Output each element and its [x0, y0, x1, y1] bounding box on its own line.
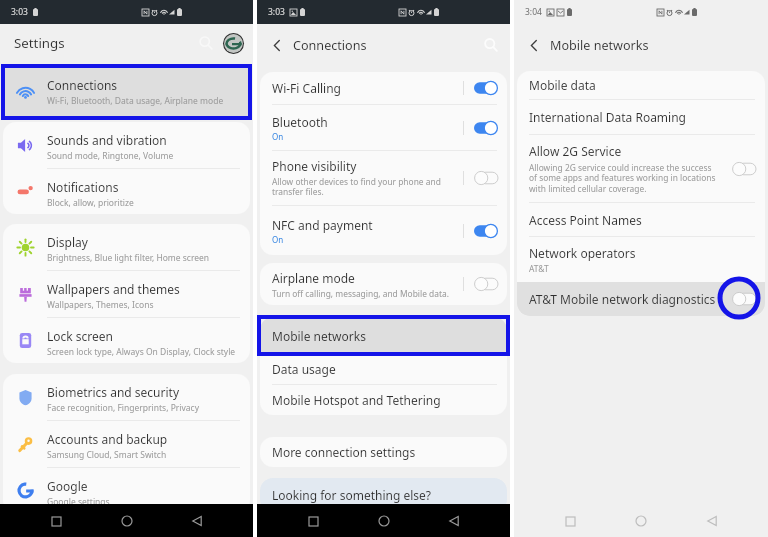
button[interactable]: Back: [697, 506, 727, 536]
staticText: Accounts and backup: [47, 431, 168, 447]
staticText: Google: [47, 478, 88, 494]
button[interactable]: Accounts and backup: [3, 421, 250, 467]
staticText: Network operators: [529, 245, 636, 261]
button[interactable]: Back: [182, 506, 212, 536]
staticText: Wi-Fi Calling: [272, 80, 341, 96]
staticText: Bluetooth: [272, 114, 328, 130]
button[interactable]: Recents: [298, 506, 328, 536]
button[interactable]: Wi-Fi Calling: [260, 72, 507, 104]
staticText: Mobile Hotspot and Tethering: [272, 392, 441, 408]
staticText: Lock screen: [47, 328, 114, 344]
button[interactable]: Home: [626, 506, 656, 536]
button[interactable]: Turn on Phone visibility: [464, 151, 507, 205]
button[interactable]: Turn on Airplane mode: [464, 263, 507, 305]
button[interactable]: Home: [112, 506, 142, 536]
staticText: Mobile networks: [272, 328, 366, 344]
staticText: AT&T: [529, 263, 549, 274]
button[interactable]: Toggle AT&T Mobile network diagnostics: [723, 282, 765, 316]
button[interactable]: Mobile Hotspot and Tethering: [260, 385, 507, 415]
staticText: Airplane mode: [272, 270, 355, 286]
button[interactable]: Allow 2G Service: [517, 135, 765, 202]
staticText: Notifications: [47, 179, 119, 195]
staticText: Connections: [47, 77, 118, 93]
staticText: 3:04: [525, 6, 542, 18]
staticText: Wallpapers, Themes, Icons: [47, 299, 154, 311]
staticText: On: [272, 234, 284, 245]
button[interactable]: Wallpapers and themes: [3, 271, 250, 317]
button[interactable]: Recents: [555, 506, 585, 536]
button[interactable]: International Data Roaming: [517, 100, 765, 134]
staticText: On: [272, 131, 284, 142]
button[interactable]: Data usage: [260, 354, 507, 384]
staticText: Looking for something else?: [272, 487, 432, 503]
staticText: Face recognition, Fingerprints, Privacy: [47, 402, 199, 414]
staticText: Block, allow, prioritize: [47, 197, 134, 209]
staticText: Display: [47, 234, 88, 250]
button[interactable]: More connection settings: [260, 437, 507, 467]
staticText: Access Point Names: [529, 212, 642, 228]
staticText: NFC and payment: [272, 217, 373, 233]
button[interactable]: Mobile networks: [260, 317, 507, 354]
staticText: Turn off calling, messaging, and Mobile …: [272, 288, 449, 299]
staticText: Mobile networks: [550, 37, 649, 54]
button[interactable]: Back: [524, 35, 544, 55]
button[interactable]: Display: [3, 224, 250, 270]
button[interactable]: Biometrics and security: [3, 374, 250, 420]
staticText: International Data Roaming: [529, 109, 686, 125]
button[interactable]: Google: [3, 468, 250, 513]
button[interactable]: Airplane mode: [260, 263, 507, 305]
staticText: Phone visibility: [272, 158, 357, 174]
button[interactable]: Access Point Names: [517, 203, 765, 236]
staticText: Wallpapers and themes: [47, 281, 180, 297]
button[interactable]: Home: [369, 506, 399, 536]
staticText: Sounds and vibration: [47, 132, 167, 148]
staticText: 3:03: [11, 6, 28, 18]
staticText: Brightness, Blue light filter, Home scre…: [47, 252, 210, 264]
staticText: Mobile data: [529, 77, 596, 93]
staticText: More connection settings: [272, 444, 416, 460]
button[interactable]: Bluetooth: [260, 105, 507, 150]
button[interactable]: AT&T Mobile network diagnostics: [517, 282, 765, 316]
staticText: Google settings: [47, 496, 110, 508]
button[interactable]: Toggle Allow 2G Service: [723, 135, 765, 202]
button[interactable]: Sounds and vibration: [3, 122, 250, 168]
button[interactable]: Turn off Bluetooth: [464, 105, 507, 150]
button[interactable]: Search: [481, 35, 501, 55]
staticText: Allowing 2G service could increase the s…: [529, 162, 716, 195]
staticText: Biometrics and security: [47, 384, 180, 400]
staticText: Sound mode, Ringtone, Volume: [47, 150, 174, 162]
button[interactable]: Notifications: [3, 169, 250, 214]
staticText: Settings: [14, 34, 65, 52]
staticText: Connections: [293, 37, 367, 54]
staticText: 3:03: [268, 6, 285, 18]
button[interactable]: Turn off NFC and payment: [464, 206, 507, 255]
button[interactable]: Back: [267, 35, 287, 55]
staticText: Data usage: [272, 361, 336, 377]
staticText: Screen lock type, Always On Display, Clo…: [47, 346, 236, 358]
staticText: Allow other devices to find your phone a…: [272, 176, 441, 198]
button[interactable]: Phone visibility: [260, 151, 507, 205]
button[interactable]: Mobile data: [517, 71, 765, 99]
staticText: Samsung Cloud, Smart Switch: [47, 449, 167, 461]
button[interactable]: Turn off Wi-Fi Calling: [464, 72, 507, 104]
button[interactable]: Recents: [41, 506, 71, 536]
button[interactable]: Back: [439, 506, 469, 536]
button[interactable]: Looking for something else?: [260, 478, 507, 512]
button[interactable]: Connections: [3, 66, 250, 118]
button[interactable]: Network operators: [517, 237, 765, 282]
staticText: AT&T Mobile network diagnostics: [529, 291, 723, 307]
button[interactable]: Profile: [221, 31, 245, 55]
staticText: Allow 2G Service: [529, 143, 622, 159]
button[interactable]: Lock screen: [3, 318, 250, 363]
button[interactable]: NFC and payment: [260, 206, 507, 255]
staticText: Wi-Fi, Bluetooth, Data usage, Airplane m…: [47, 95, 224, 107]
